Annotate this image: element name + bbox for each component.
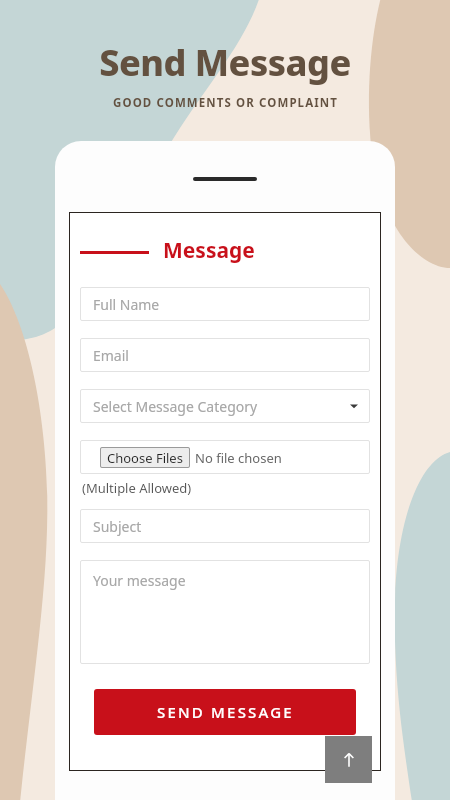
staticText: Message xyxy=(163,236,255,265)
staticText: Full Name xyxy=(93,295,160,314)
staticText: No file chosen xyxy=(195,449,282,467)
staticText: Send Message xyxy=(99,38,351,87)
staticText: GOOD COMMENTS OR COMPLAINT xyxy=(113,95,338,111)
staticText: Email xyxy=(93,346,129,365)
staticText: Choose Files xyxy=(107,449,183,467)
button[interactable]: Select Message Category xyxy=(80,389,370,423)
staticText: SEND MESSAGE xyxy=(157,702,294,722)
staticText: Subject xyxy=(93,517,142,536)
button[interactable]: Choose Files xyxy=(100,447,190,468)
button[interactable]: Scroll to top xyxy=(325,736,372,783)
button[interactable]: SEND MESSAGE xyxy=(94,689,356,735)
staticText: Select Message Category xyxy=(93,397,258,416)
button[interactable]: Your message xyxy=(80,560,370,664)
button[interactable]: Subject xyxy=(80,509,370,543)
button[interactable]: Full Name xyxy=(80,287,370,321)
staticText: (Multiple Allowed) xyxy=(82,479,192,497)
staticText: Your message xyxy=(93,571,186,590)
button[interactable]: Email xyxy=(80,338,370,372)
